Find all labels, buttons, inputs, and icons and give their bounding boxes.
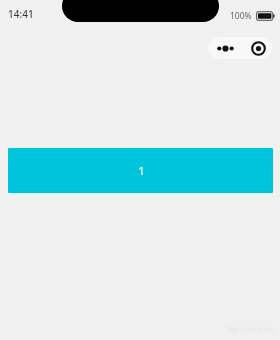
button[interactable]: Close <box>240 37 272 59</box>
button[interactable]: 1 <box>8 148 273 193</box>
button[interactable]: More <box>209 37 240 59</box>
staticText: 14:41 <box>8 7 34 21</box>
staticText: 100% <box>230 10 252 22</box>
staticText: 1 <box>138 163 145 179</box>
